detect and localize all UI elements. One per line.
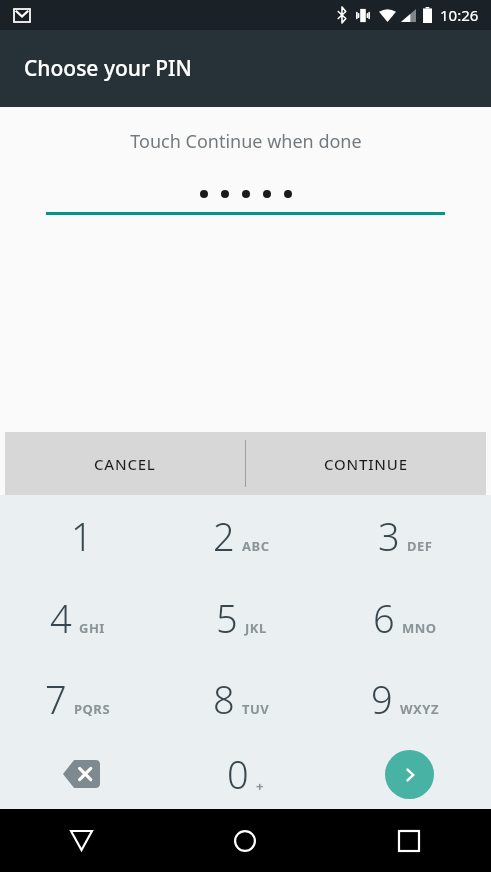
button[interactable]: Recent apps: [327, 809, 491, 872]
staticText: MNO: [402, 619, 437, 637]
staticText: 9: [371, 673, 393, 725]
staticText: +: [256, 777, 264, 795]
button[interactable]: 4: [0, 577, 163, 658]
button[interactable]: 8: [163, 658, 327, 739]
staticText: 5: [216, 592, 238, 644]
staticText: JKL: [245, 619, 267, 637]
staticText: 4: [50, 592, 72, 644]
staticText: DEF: [407, 537, 433, 555]
staticText: TUV: [242, 700, 270, 718]
staticText: 2: [213, 510, 235, 562]
staticText: 6: [373, 592, 395, 644]
button[interactable]: 9: [327, 658, 491, 739]
staticText: PQRS: [74, 700, 111, 718]
staticText: WXYZ: [400, 700, 439, 718]
staticText: 1: [71, 510, 93, 562]
button[interactable]: Delete: [0, 739, 163, 809]
button[interactable]: 2: [163, 495, 327, 577]
button[interactable]: 1: [0, 495, 163, 577]
button[interactable]: Continue: [385, 750, 434, 799]
button[interactable]: 3: [327, 495, 491, 577]
button[interactable]: Home: [163, 809, 327, 872]
button[interactable]: 5: [163, 577, 327, 658]
staticText: GHI: [79, 619, 105, 637]
staticText: Touch Continue when done: [130, 129, 362, 154]
button[interactable]: Back: [0, 809, 163, 872]
button[interactable]: 7: [0, 658, 163, 739]
staticText: ABC: [242, 537, 270, 555]
staticText: 0: [227, 748, 249, 800]
staticText: CANCEL: [94, 454, 156, 474]
staticText: 7: [45, 673, 67, 725]
staticText: Choose your PIN: [24, 54, 192, 83]
staticText: 8: [213, 673, 235, 725]
staticText: 3: [378, 510, 400, 562]
staticText: CONTINUE: [324, 454, 408, 474]
staticText: 10:26: [440, 5, 479, 25]
button[interactable]: CONTINUE: [246, 432, 486, 495]
button[interactable]: CANCEL: [5, 432, 245, 495]
button[interactable]: 6: [327, 577, 491, 658]
button[interactable]: 0: [163, 739, 327, 809]
